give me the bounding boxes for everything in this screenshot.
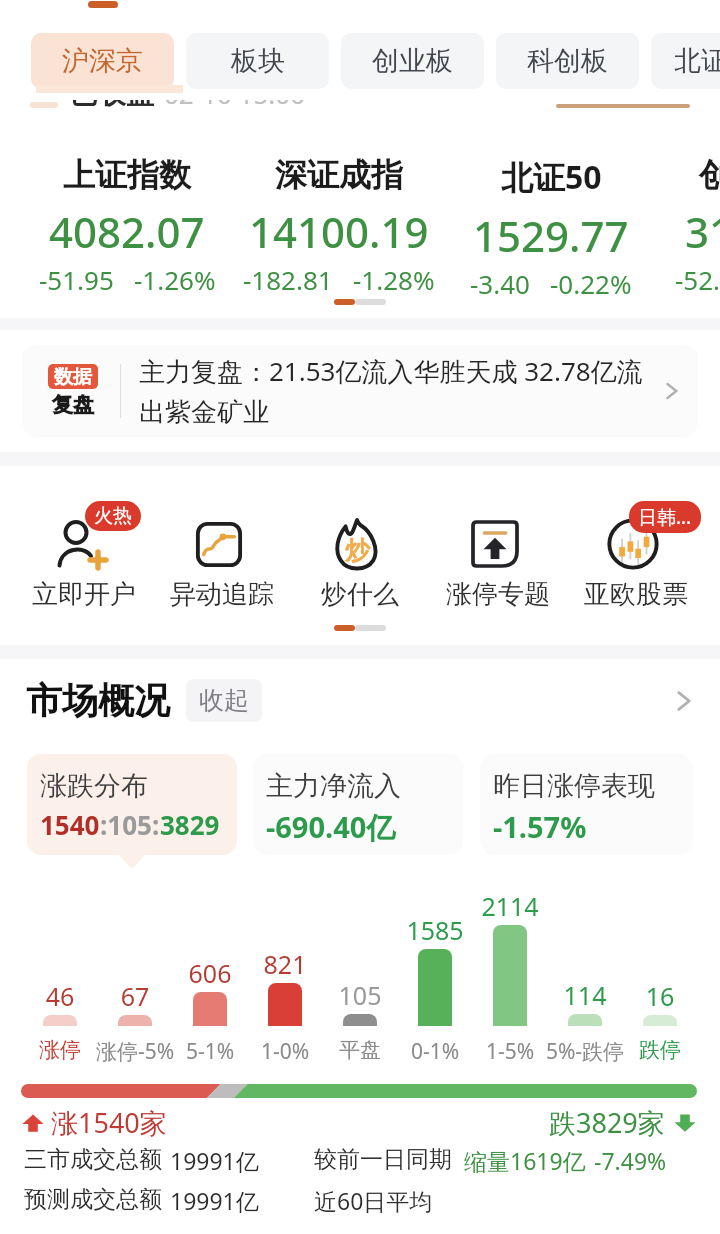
staticText: -182.81 xyxy=(243,262,333,297)
button[interactable]: 沪深京 xyxy=(31,33,174,89)
staticText: 收起 xyxy=(199,685,249,716)
staticText: 市场概况 xyxy=(26,678,170,723)
staticText: 1-5% xyxy=(450,1037,570,1066)
button[interactable]: 涨跌分布 xyxy=(27,754,237,855)
staticText: -690.40亿 xyxy=(266,807,396,847)
staticText: 4082.07 xyxy=(49,203,205,260)
staticText: 0-1% xyxy=(375,1037,495,1066)
staticText: 1529.77 xyxy=(473,207,629,264)
staticText: 日韩… xyxy=(638,504,692,530)
staticText: 火热 xyxy=(94,504,132,528)
staticText: 5-1% xyxy=(150,1037,270,1066)
staticText: 已收盘 xyxy=(70,100,154,111)
staticText: 涨停-5% xyxy=(75,1037,195,1066)
staticText: 较前一日同期 xyxy=(314,1145,452,1174)
staticText: -52.10 xyxy=(675,262,720,297)
staticText: 105 xyxy=(300,978,420,1012)
staticText: 主力复盘：21.53亿流入华胜天成 32.78亿流出紫金矿业 xyxy=(139,353,654,429)
staticText: 复盘 xyxy=(52,392,94,418)
staticText: 19991亿 xyxy=(170,1185,259,1216)
staticText: 预测成交总额 xyxy=(24,1185,162,1214)
staticText: 异动追踪 xyxy=(170,578,274,611)
button[interactable]: 主力净流入 xyxy=(253,754,463,855)
staticText: 67 xyxy=(75,979,195,1013)
staticText: 创业板 xyxy=(372,44,453,78)
staticText: -51.95 xyxy=(39,262,114,297)
staticText: 16 xyxy=(600,979,720,1013)
button[interactable]: 科创板 xyxy=(496,33,639,89)
staticText: 02-10 15:00 xyxy=(164,100,306,111)
button[interactable]: 亚欧股票 xyxy=(567,490,705,612)
button[interactable]: 创业板 xyxy=(341,33,484,89)
staticText: 1-0% xyxy=(225,1037,345,1066)
button[interactable]: 昨日涨停表现 xyxy=(480,754,693,855)
button[interactable]: 市场概况 xyxy=(26,678,696,723)
staticText: 跌3829家 xyxy=(549,1104,665,1141)
staticText: -1.57% xyxy=(493,807,587,846)
staticText: 跌停 xyxy=(600,1037,720,1063)
staticText: -7.49% xyxy=(594,1145,667,1176)
staticText: 1540 xyxy=(40,807,100,842)
staticText: 5%-跌停 xyxy=(525,1037,645,1066)
staticText: 缩量1619亿 xyxy=(464,1145,586,1176)
staticText: 亚欧股票 xyxy=(584,578,688,611)
staticText: 北证50 xyxy=(501,155,602,199)
staticText: 炒 xyxy=(345,535,370,566)
button[interactable]: 立即开户 xyxy=(15,490,153,612)
staticText: 平盘 xyxy=(300,1037,420,1063)
staticText: 板块 xyxy=(231,44,285,78)
staticText: 数据 xyxy=(54,365,92,389)
staticText: 炒什么 xyxy=(321,578,399,611)
staticText: 606 xyxy=(150,956,270,990)
staticText: 3161.53 xyxy=(685,203,720,260)
staticText: 114 xyxy=(525,978,645,1012)
button[interactable]: 数据 xyxy=(22,345,698,437)
staticText: 3829 xyxy=(160,807,220,842)
staticText: 三市成交总额 xyxy=(24,1145,162,1174)
staticText: 821 xyxy=(225,947,345,981)
button[interactable]: 北证 xyxy=(651,33,720,89)
button[interactable]: 异动追踪 xyxy=(153,490,291,612)
staticText: 立即开户 xyxy=(32,578,136,611)
staticText: 涨停 xyxy=(0,1037,120,1063)
staticText: 北证 xyxy=(674,44,720,78)
button[interactable]: 涨停专题 xyxy=(429,490,567,612)
staticText: -0.22% xyxy=(550,266,632,301)
staticText: :105: xyxy=(100,807,160,842)
staticText: -3.40 xyxy=(470,266,530,301)
staticText: 46 xyxy=(0,979,120,1013)
button[interactable]: 炒什么 xyxy=(291,490,429,612)
staticText: 主力净流入 xyxy=(266,769,401,803)
staticText: 昨日涨停表现 xyxy=(493,769,655,803)
staticText: 沪深京 xyxy=(62,44,143,78)
staticText: 涨停专题 xyxy=(446,578,550,611)
button[interactable]: 板块 xyxy=(186,33,329,89)
staticText: 2114 xyxy=(450,889,570,923)
staticText: 上证指数 xyxy=(63,155,191,195)
staticText: 近60日平均 xyxy=(314,1185,433,1216)
staticText: 1585 xyxy=(375,913,495,947)
staticText: -1.26% xyxy=(134,262,216,297)
staticText: 科创板 xyxy=(527,44,608,78)
staticText: 涨1540家 xyxy=(51,1104,167,1141)
staticText: 涨跌分布 xyxy=(40,769,148,803)
staticText: 19991亿 xyxy=(170,1145,259,1176)
staticText: -1.28% xyxy=(353,262,435,297)
staticText: 14100.19 xyxy=(249,203,429,260)
staticText: 创业板指 xyxy=(699,155,720,195)
staticText: 深证成指 xyxy=(275,155,403,195)
